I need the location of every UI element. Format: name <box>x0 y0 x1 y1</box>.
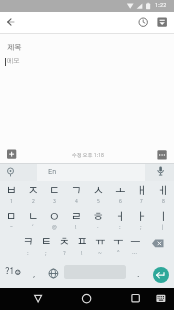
staticText: ! <box>81 251 83 256</box>
button[interactable] <box>154 147 171 163</box>
staticText: ㅎ <box>93 212 104 223</box>
staticText: · <box>97 225 99 230</box>
staticText: , <box>33 271 36 278</box>
button[interactable] <box>73 233 91 259</box>
button[interactable] <box>3 147 19 163</box>
button[interactable] <box>37 233 55 259</box>
staticText: 2 <box>32 199 35 204</box>
staticText: ㅜ <box>113 237 124 248</box>
button[interactable] <box>126 289 146 308</box>
staticText: 1 <box>10 199 13 204</box>
button[interactable] <box>87 181 109 207</box>
button[interactable] <box>126 233 144 259</box>
button[interactable] <box>154 14 171 31</box>
staticText: ㅈ <box>28 186 39 197</box>
button[interactable] <box>45 264 62 282</box>
button[interactable] <box>13 267 23 277</box>
button[interactable] <box>0 37 174 54</box>
staticText: ? <box>63 251 66 256</box>
button[interactable] <box>91 233 109 259</box>
button[interactable] <box>19 233 37 259</box>
staticText: 수정 오후 1:18 <box>72 153 104 158</box>
button[interactable] <box>65 207 87 233</box>
staticText: ㅊ <box>59 237 70 248</box>
button[interactable] <box>131 181 153 207</box>
button[interactable] <box>0 207 22 233</box>
staticText: 5 <box>97 199 100 204</box>
button[interactable] <box>3 14 19 31</box>
staticText: @ <box>52 225 57 230</box>
button[interactable] <box>0 54 174 142</box>
button[interactable] <box>109 181 131 207</box>
button[interactable] <box>146 234 170 254</box>
button[interactable] <box>22 181 44 207</box>
button[interactable] <box>44 207 66 233</box>
staticText: ; <box>140 225 142 230</box>
staticText: ㅌ <box>41 237 52 248</box>
staticText: . <box>137 271 140 278</box>
staticText: ㅁ <box>6 212 17 223</box>
staticText: En <box>48 168 57 175</box>
staticText: ; <box>45 251 47 256</box>
button[interactable] <box>152 163 170 180</box>
staticText: ㅏ <box>136 212 147 223</box>
staticText: 1:22 <box>155 3 167 9</box>
staticText: 6 <box>119 199 122 204</box>
button[interactable] <box>0 181 22 207</box>
staticText: ㄱ <box>71 186 82 197</box>
button[interactable] <box>87 207 109 233</box>
button[interactable] <box>109 233 127 259</box>
button[interactable] <box>30 163 90 180</box>
button[interactable] <box>28 289 48 308</box>
staticText: 3 <box>53 199 56 204</box>
staticText: ! <box>75 225 77 230</box>
staticText: - <box>10 225 13 230</box>
staticText: | <box>162 225 164 230</box>
staticText: : <box>27 251 29 256</box>
button[interactable] <box>22 207 44 233</box>
button[interactable] <box>0 261 27 288</box>
button[interactable] <box>153 267 169 283</box>
staticText: ㅗ <box>115 186 126 197</box>
staticText: ㅠ <box>95 237 106 248</box>
staticText: ㅡ <box>130 237 141 248</box>
staticText: ㅣ <box>158 212 169 223</box>
button[interactable] <box>152 289 170 308</box>
staticText: ㄹ <box>71 212 82 223</box>
button[interactable] <box>135 14 151 31</box>
staticText: ㅅ <box>93 186 104 197</box>
staticText: ㅓ <box>115 212 126 223</box>
staticText: ~ <box>98 251 102 256</box>
staticText: ㅍ <box>77 237 88 248</box>
staticText: 제목 <box>7 44 22 52</box>
staticText: 7 <box>140 199 143 204</box>
staticText: ㅂ <box>6 186 17 197</box>
staticText: … <box>132 251 138 256</box>
staticText: ^ <box>117 251 120 256</box>
button[interactable] <box>152 181 174 207</box>
staticText: ㄴ <box>28 212 39 223</box>
button[interactable] <box>109 207 131 233</box>
staticText: ㅇ <box>49 212 60 223</box>
staticText: ㅐ <box>136 186 147 197</box>
button[interactable] <box>44 181 66 207</box>
staticText: ㅔ <box>158 186 169 197</box>
staticText: 4 <box>75 199 78 204</box>
staticText: ?1 <box>5 268 15 276</box>
button[interactable] <box>55 233 73 259</box>
button[interactable] <box>152 207 174 233</box>
staticText: 8 <box>162 199 165 204</box>
button[interactable] <box>3 164 19 180</box>
staticText: ' <box>32 225 34 230</box>
button[interactable] <box>65 181 87 207</box>
staticText: : <box>119 225 121 230</box>
button[interactable] <box>77 289 97 308</box>
staticText: ㄷ <box>49 186 60 197</box>
button[interactable] <box>131 207 153 233</box>
staticText: ㅋ <box>23 237 34 248</box>
staticText: 메모 <box>7 58 20 65</box>
